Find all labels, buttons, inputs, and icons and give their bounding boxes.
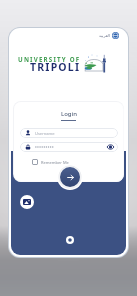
button[interactable]: Sign in: [60, 167, 80, 187]
staticText: Remember Me: [41, 160, 69, 165]
staticText: Login: [61, 110, 77, 118]
button[interactable]: العربية: [99, 32, 119, 39]
button[interactable]: Remember Me: [31, 158, 70, 166]
button[interactable]: Gallery: [20, 195, 34, 209]
staticText: UNIVERSITY OF: [18, 55, 81, 63]
button[interactable]: [20, 142, 118, 152]
staticText: Username: [35, 131, 55, 136]
staticText: TRIPOLI: [30, 60, 81, 74]
button[interactable]: Info: [66, 236, 74, 244]
button[interactable]: Username: [20, 128, 118, 138]
staticText: العربية: [99, 33, 110, 38]
